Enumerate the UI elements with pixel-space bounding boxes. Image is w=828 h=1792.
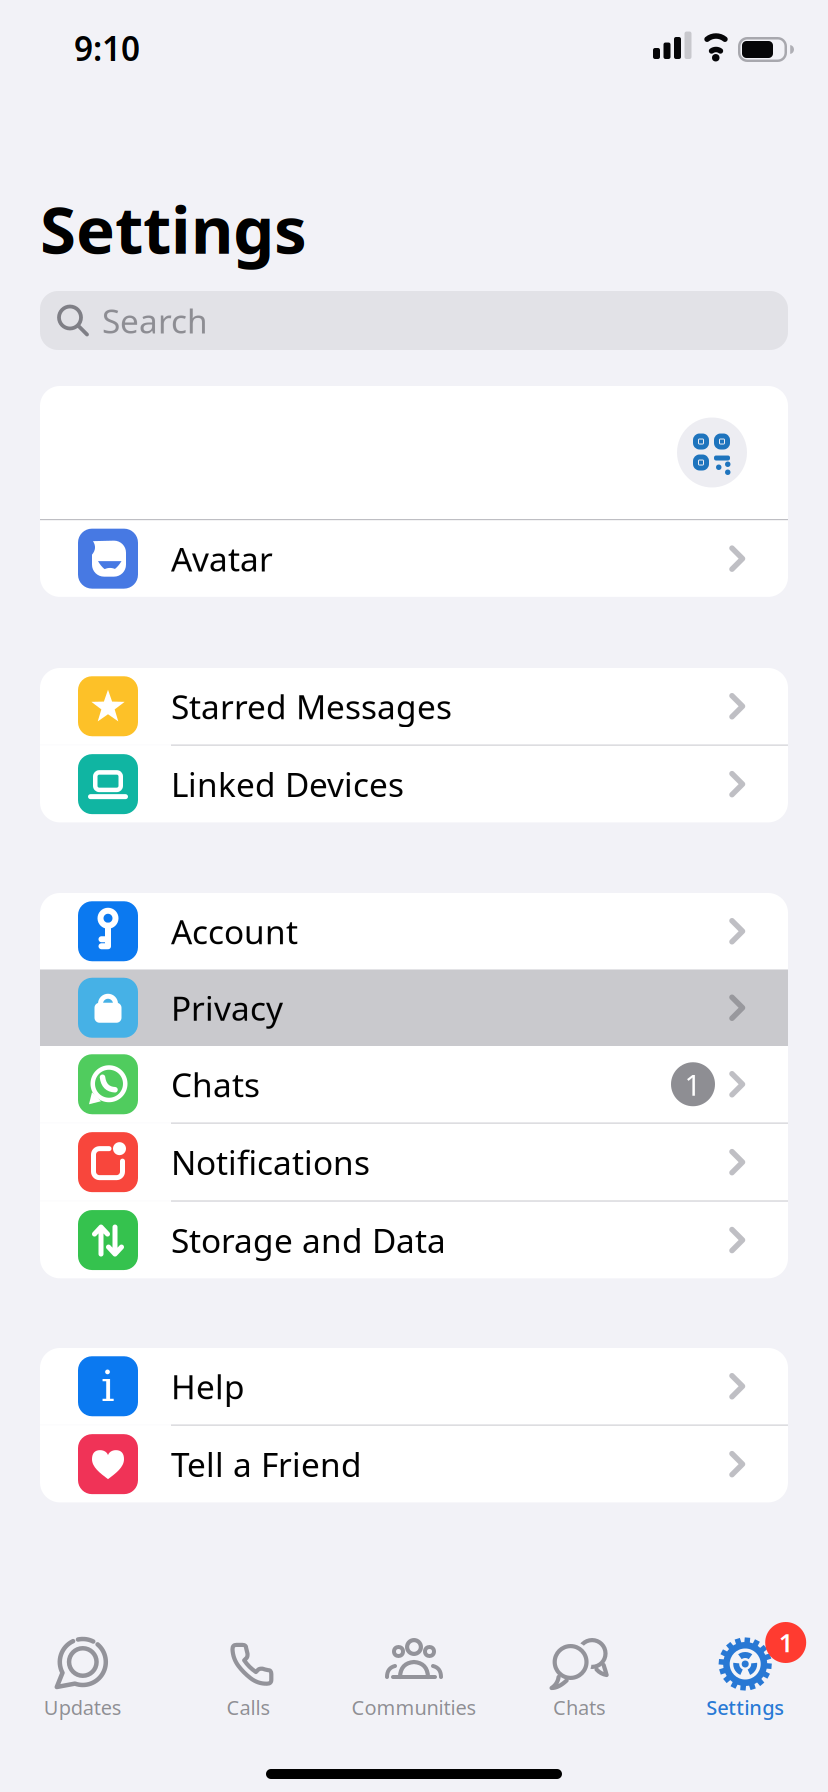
staticText: Chats [553, 1694, 606, 1721]
staticText: Notifications [171, 1140, 370, 1184]
staticText: Calls [226, 1694, 270, 1721]
button[interactable]: Account [40, 893, 788, 969]
button[interactable]: Notifications [40, 1124, 788, 1200]
button[interactable]: Chats [497, 1632, 662, 1721]
staticText: Chats [171, 1062, 260, 1106]
staticText: Help [171, 1364, 245, 1408]
staticText: Avatar [171, 536, 273, 581]
button[interactable]: 1 [662, 1632, 828, 1721]
button[interactable]: Communities [331, 1632, 497, 1721]
staticText: Updates [44, 1694, 122, 1721]
staticText: 9:10 [74, 26, 140, 70]
staticText: Account [171, 909, 298, 953]
button[interactable]: Linked Devices [40, 746, 788, 822]
button[interactable]: i [40, 1348, 788, 1424]
staticText: Privacy [171, 986, 283, 1030]
staticText: Settings [706, 1694, 784, 1721]
staticText: Starred Messages [171, 684, 452, 728]
staticText: Communities [351, 1694, 476, 1721]
button[interactable]: Tell a Friend [40, 1426, 788, 1502]
button[interactable]: Avatar [40, 520, 788, 597]
button[interactable]: Storage and Data [40, 1202, 788, 1278]
staticText: 1 [779, 1626, 793, 1659]
staticText: i [101, 1361, 115, 1411]
staticText: 1 [684, 1065, 701, 1104]
button[interactable]: Privacy [40, 969, 788, 1046]
button[interactable]: Updates [0, 1632, 166, 1721]
staticText: Storage and Data [171, 1218, 446, 1262]
staticText: Linked Devices [171, 762, 404, 806]
staticText: Tell a Friend [171, 1442, 362, 1486]
staticText: Search [102, 298, 208, 343]
button[interactable]: Starred Messages [40, 668, 788, 744]
button[interactable]: Chats [40, 1046, 788, 1122]
button[interactable]: Profile QR code [40, 386, 788, 519]
button[interactable]: Search [40, 291, 788, 350]
staticText: Settings [40, 185, 307, 272]
button[interactable]: Calls [166, 1632, 331, 1721]
